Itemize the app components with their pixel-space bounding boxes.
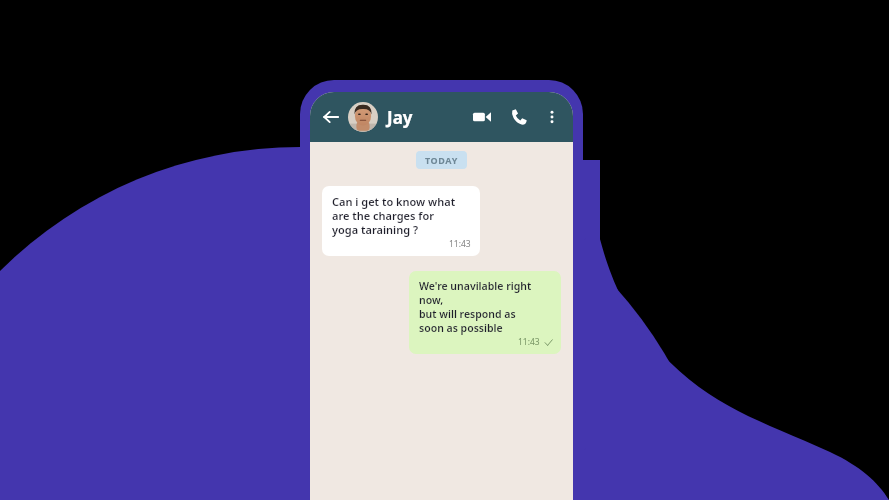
staticText: TODAY: [425, 154, 458, 166]
button[interactable]: Can i get to know what are the charges f…: [322, 186, 480, 256]
button[interactable]: Back: [320, 106, 342, 128]
staticText: We're unavilable right now, but will res…: [419, 279, 553, 335]
button[interactable]: Contact photo: [348, 102, 378, 132]
button[interactable]: Video call: [469, 104, 495, 130]
button[interactable]: TODAY: [425, 154, 458, 166]
button[interactable]: More options: [541, 106, 563, 128]
staticText: Can i get to know what are the charges f…: [332, 194, 456, 237]
staticText: Jay: [387, 106, 413, 129]
button[interactable]: We're unavilable right now, but will res…: [409, 271, 561, 354]
staticText: 11:43: [449, 238, 471, 250]
button[interactable]: Voice call: [506, 104, 532, 130]
staticText: 11:43: [518, 336, 540, 348]
